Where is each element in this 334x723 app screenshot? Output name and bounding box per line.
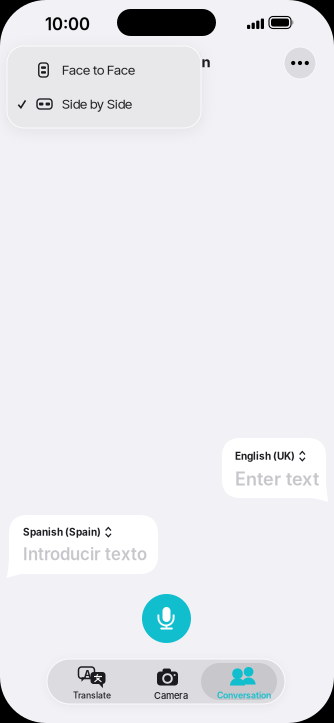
button[interactable]: Conversation: [201, 663, 277, 700]
button[interactable]: Side by Side: [7, 87, 201, 121]
button[interactable]: A: [54, 663, 130, 700]
button[interactable]: More options: [284, 47, 316, 79]
staticText: Conversation: [217, 690, 271, 700]
staticText: Camera: [154, 690, 188, 701]
staticText: Side by Side: [62, 96, 132, 112]
staticText: Face to Face: [62, 62, 135, 78]
button[interactable]: Start recording: [142, 594, 191, 643]
button[interactable]: Camera: [133, 663, 209, 700]
button[interactable]: Spanish (Spain): [2, 515, 158, 578]
staticText: Enter text: [235, 468, 319, 490]
staticText: 10:00: [45, 14, 90, 34]
button[interactable]: Face to Face: [7, 53, 201, 87]
staticText: A: [84, 668, 91, 680]
staticText: English (UK): [235, 450, 295, 462]
button[interactable]: English (UK): [222, 438, 334, 502]
staticText: Translate: [73, 690, 111, 700]
staticText: Conversation: [113, 53, 210, 71]
staticText: Introducir texto: [23, 544, 147, 564]
staticText: Spanish (Spain): [23, 526, 101, 538]
